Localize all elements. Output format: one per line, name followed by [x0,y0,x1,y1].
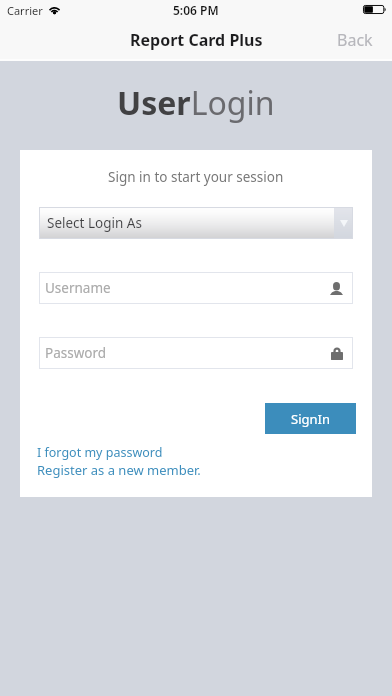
staticText: I forgot my password [37,444,163,461]
staticText: SignIn [291,410,330,428]
other: Password [331,347,343,360]
button[interactable]: SignIn [265,403,356,434]
staticText: Carrier [7,3,43,18]
staticText: Back [337,29,373,51]
button[interactable]: Select Login As [39,207,353,239]
staticText: Sign in to start your session [108,168,284,186]
staticText: Username [45,279,330,297]
staticText: Password [45,344,331,362]
staticText: Select Login As [47,214,334,232]
staticText: 5:06 PM [173,2,219,18]
other: User [330,282,343,295]
button[interactable]: Back [323,22,392,60]
button[interactable]: I forgot my password [37,444,169,461]
button[interactable]: Register as a new member. [37,461,207,479]
other: Expand [340,220,348,227]
staticText: Report Card Plus [130,29,263,51]
button[interactable]: Password [39,337,353,369]
staticText: Register as a new member. [37,461,201,479]
button[interactable]: Username [39,272,353,304]
staticText: UserLogin [117,81,275,125]
other: Battery [363,5,386,14]
